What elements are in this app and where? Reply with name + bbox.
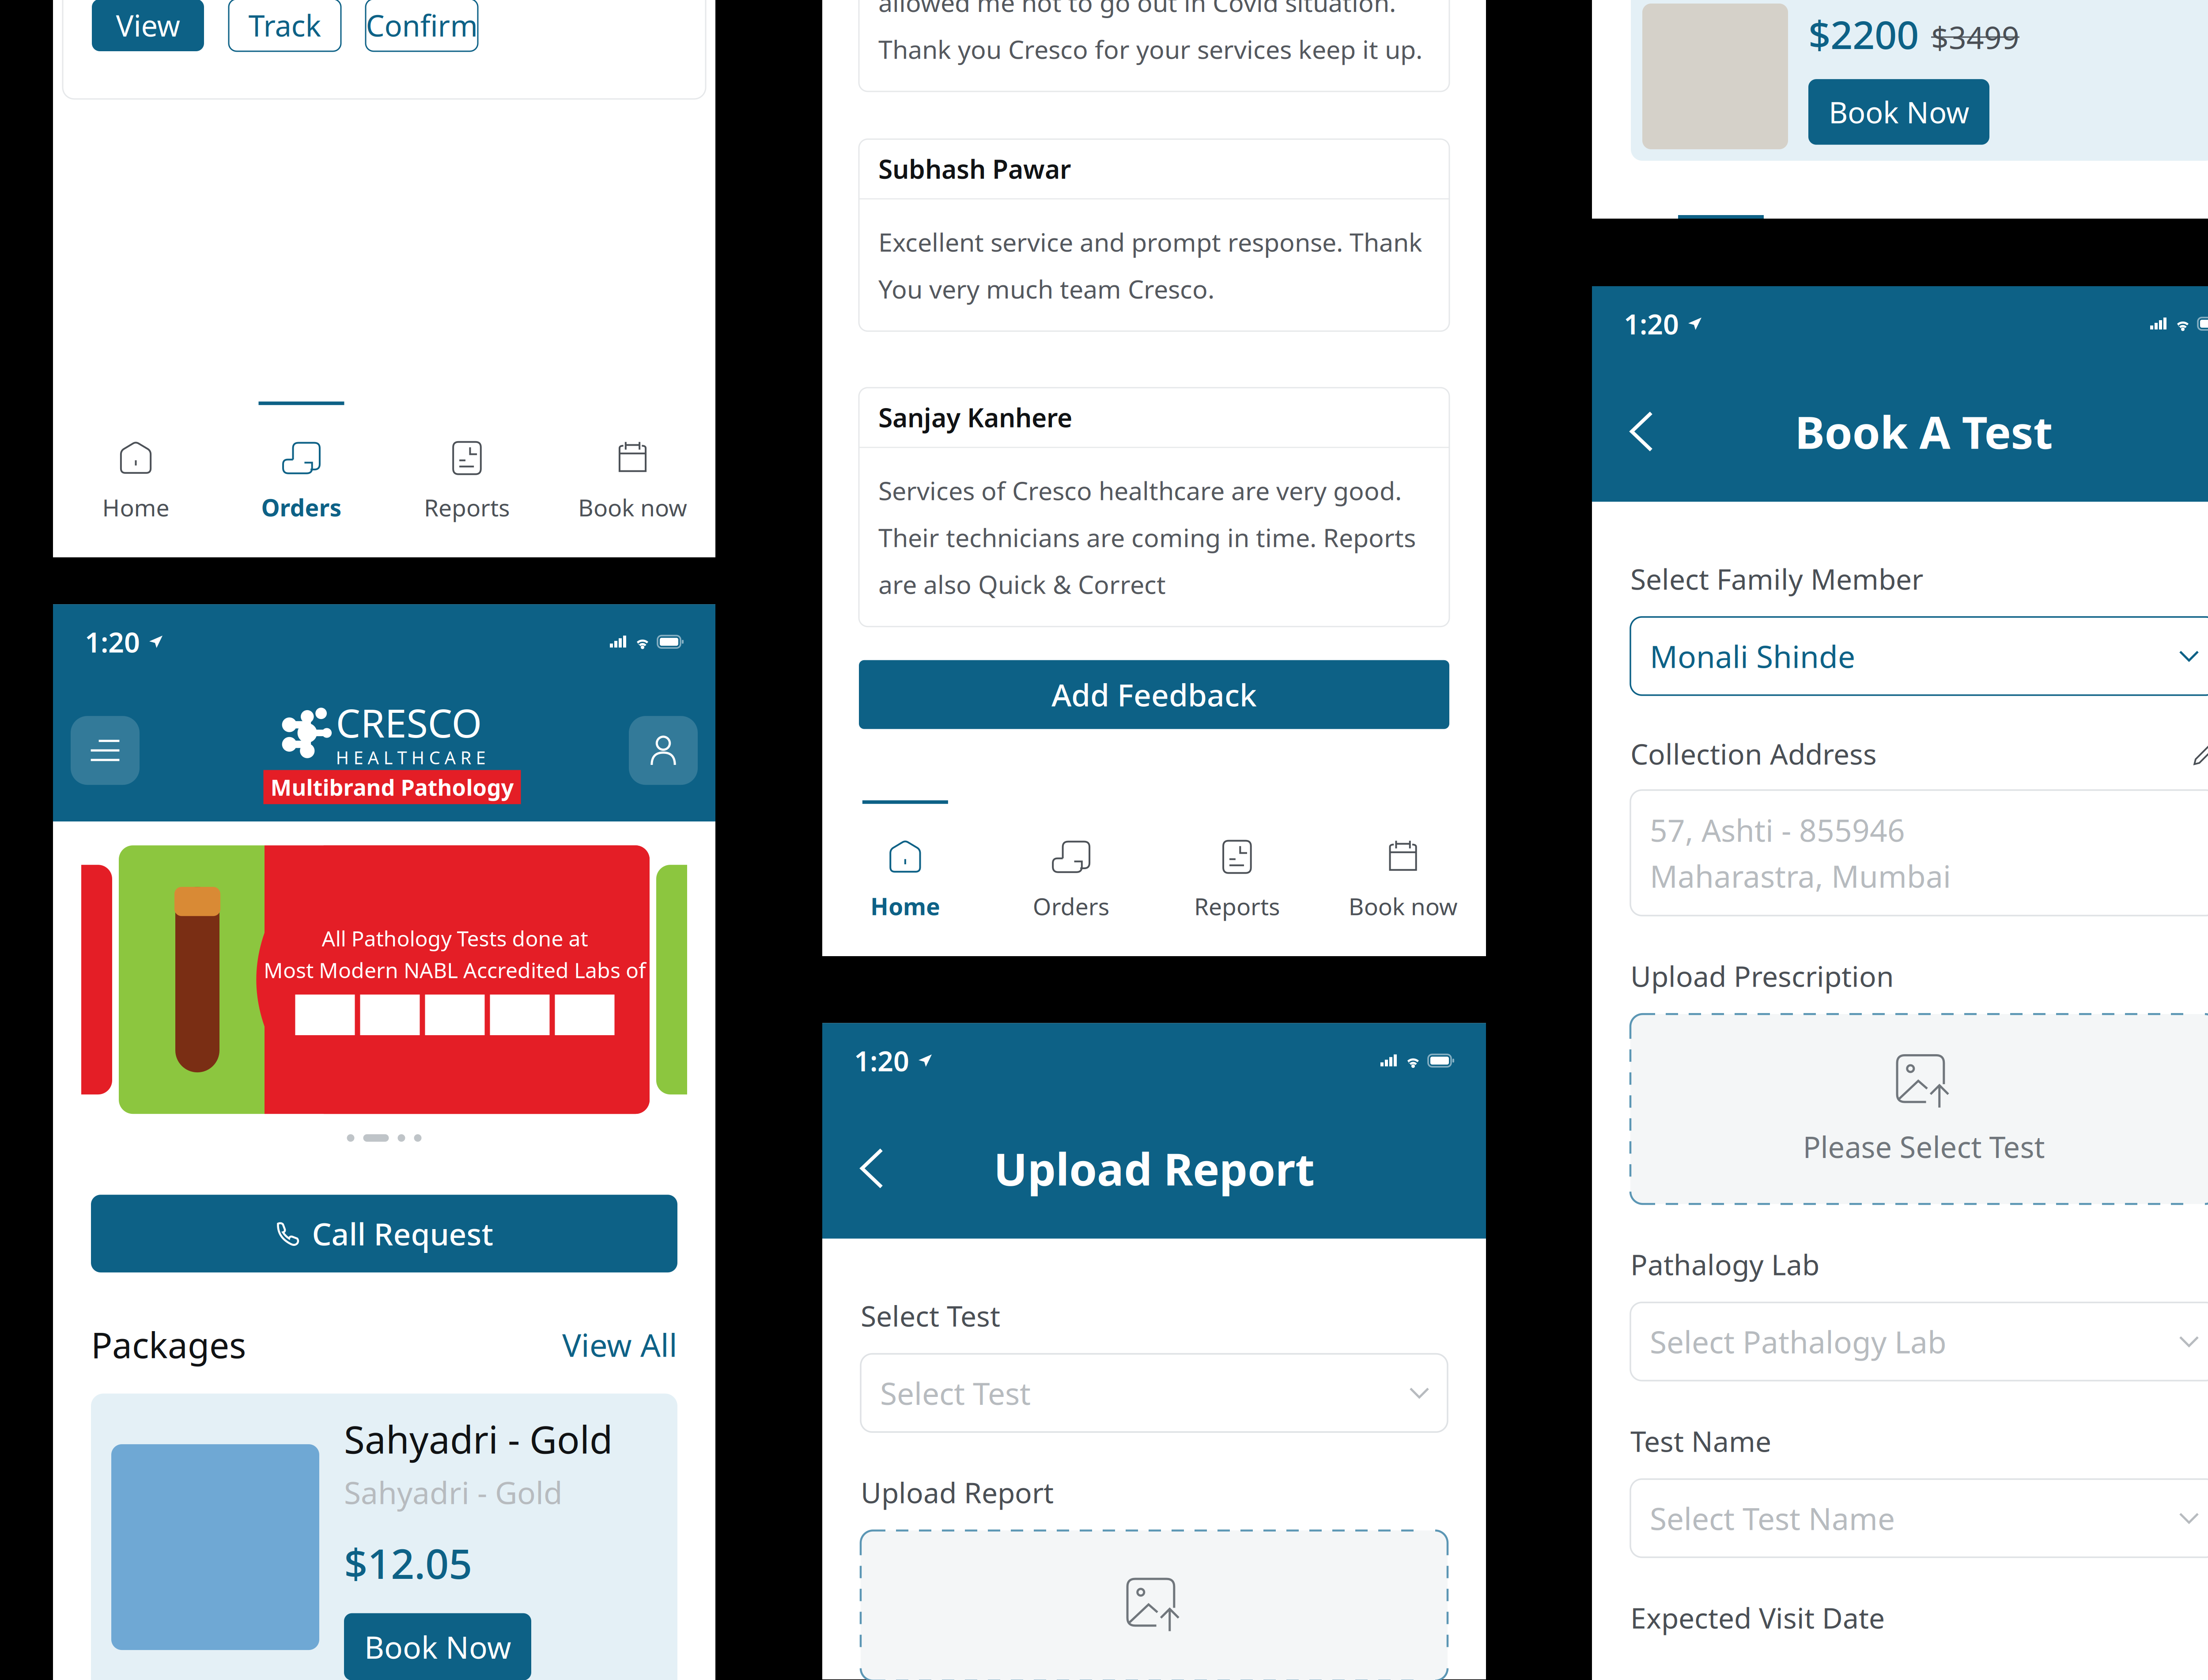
staticText: 1:20: [1624, 305, 1679, 342]
staticText: Select Test: [880, 1373, 1031, 1413]
button[interactable]: Orders: [219, 402, 384, 557]
button[interactable]: Book now: [1320, 800, 1486, 956]
staticText: Select Test Name: [1650, 1498, 1895, 1539]
button[interactable]: View: [92, 0, 204, 51]
staticText: View All: [562, 1323, 677, 1366]
staticText: Please Select Test: [1803, 1127, 2045, 1166]
button[interactable]: Book now: [550, 402, 715, 557]
button[interactable]: Back: [1617, 399, 1666, 464]
button[interactable]: Call Request: [91, 1195, 677, 1272]
staticText: Monali Shinde: [1650, 636, 1855, 676]
button[interactable]: Edit address: [2193, 741, 2208, 766]
staticText: 1:20: [854, 1042, 909, 1079]
staticText: Book Now: [1829, 92, 1969, 131]
staticText: $2200: [1808, 8, 1919, 60]
staticText: Pathalogy Lab: [1630, 1245, 1819, 1283]
staticText: Sahyadri - Gold: [344, 1414, 612, 1464]
button[interactable]: Add Feedback: [859, 660, 1449, 729]
staticText: 57, Ashti - 855946: [1650, 810, 1905, 850]
staticText: Sahyadri - Gold: [344, 1472, 563, 1513]
staticText: allowed me not to go out in Covid situat…: [878, 0, 1396, 19]
staticText: Reports: [424, 492, 510, 523]
staticText: $3499: [1931, 17, 2019, 57]
staticText: Orders: [1033, 890, 1110, 922]
staticText: View: [116, 6, 180, 45]
button[interactable]: Book Now: [344, 1613, 531, 1680]
button[interactable]: Orders: [988, 800, 1154, 956]
button[interactable]: Confirm: [366, 0, 478, 51]
button[interactable]: Monali Shinde: [1630, 617, 2208, 695]
button[interactable]: Reports: [1154, 800, 1320, 956]
staticText: Most Modern NABL Accredited Labs of: [264, 956, 646, 984]
button[interactable]: Select Pathalogy Lab: [1630, 1302, 2208, 1381]
staticText: Select Family Member: [1630, 560, 1923, 598]
staticText: Packages: [91, 1321, 246, 1368]
staticText: are also Quick & Correct: [878, 567, 1166, 601]
button[interactable]: Profile: [629, 716, 698, 785]
staticText: Subhash Pawar: [878, 151, 1071, 186]
button[interactable]: Back: [847, 1136, 896, 1201]
staticText: Upload Report: [994, 1139, 1315, 1198]
button[interactable]: Book Now: [1808, 79, 1989, 145]
staticText: Home: [102, 492, 169, 523]
staticText: Test Name: [1630, 1422, 1771, 1460]
staticText: $12.05: [344, 1535, 472, 1590]
staticText: Book A Test: [1795, 402, 2053, 461]
staticText: Add Feedback: [1051, 674, 1257, 715]
staticText: CRESCO: [336, 697, 482, 748]
staticText: Maharastra, Mumbai: [1650, 855, 1951, 896]
staticText: Multibrand Pathology: [270, 772, 514, 802]
staticText: Track: [248, 6, 321, 45]
staticText: Home: [870, 890, 940, 922]
staticText: Collection Address: [1630, 735, 1877, 772]
staticText: Upload Prescription: [1630, 957, 1894, 995]
staticText: Expected Visit Date: [1630, 1599, 1885, 1636]
staticText: Sanjay Kanhere: [878, 400, 1072, 434]
staticText: Book now: [1348, 890, 1458, 922]
button[interactable]: Track: [229, 0, 341, 51]
staticText: Confirm: [366, 6, 478, 45]
staticText: H E A L T H C A R E: [336, 746, 486, 769]
staticText: Thank you Cresco for your services keep …: [878, 32, 1422, 66]
staticText: Book Now: [364, 1626, 511, 1667]
button[interactable]: Home: [53, 402, 219, 557]
button[interactable]: Select Test Name: [1630, 1479, 2208, 1557]
staticText: 1:20: [85, 623, 140, 660]
staticText: Excellent service and prompt response. T…: [878, 225, 1422, 259]
staticText: Book now: [578, 492, 687, 523]
staticText: Select Test: [861, 1297, 1000, 1334]
button[interactable]: Menu: [71, 716, 140, 785]
staticText: Upload Report: [861, 1474, 1054, 1511]
staticText: Services of Cresco healthcare are very g…: [878, 474, 1402, 507]
button[interactable]: View All: [562, 1323, 677, 1366]
button[interactable]: Reports: [384, 402, 550, 557]
button[interactable]: Home: [822, 800, 988, 956]
button[interactable]: Select Test: [861, 1354, 1448, 1432]
staticText: Reports: [1194, 890, 1280, 922]
staticText: Select Pathalogy Lab: [1650, 1321, 1947, 1362]
staticText: You very much team Cresco.: [878, 272, 1214, 305]
staticText: Their technicians are coming in time. Re…: [878, 520, 1416, 554]
staticText: All Pathology Tests done at: [322, 924, 588, 952]
staticText: Orders: [261, 492, 342, 523]
staticText: Call Request: [312, 1213, 493, 1254]
